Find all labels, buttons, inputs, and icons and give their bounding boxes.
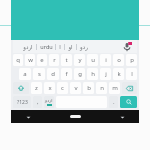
button[interactable]: Search <box>120 96 137 108</box>
staticText: p <box>130 56 134 64</box>
button[interactable]: p <box>126 54 137 66</box>
button[interactable]: z <box>31 82 42 94</box>
button[interactable]: a <box>19 68 31 80</box>
button[interactable]: r <box>49 54 59 66</box>
button[interactable]: h <box>87 68 98 80</box>
staticText: m <box>112 84 118 92</box>
staticText: ?123 <box>17 99 28 106</box>
button[interactable]: s <box>33 68 45 80</box>
staticText: q <box>16 56 20 64</box>
button[interactable]: o <box>113 54 124 66</box>
button[interactable]: i <box>100 54 111 66</box>
staticText: urdu <box>40 43 53 50</box>
staticText: d <box>51 70 55 78</box>
staticText: u <box>91 56 95 64</box>
staticText: y <box>78 56 82 64</box>
staticText: t <box>65 56 68 64</box>
button[interactable]: او <box>65 40 76 53</box>
button[interactable]: v <box>70 82 81 94</box>
button[interactable]: x <box>44 82 55 94</box>
button[interactable]: Recent apps <box>117 112 127 122</box>
staticText: a <box>23 70 27 78</box>
button[interactable]: g <box>74 68 85 80</box>
button[interactable]: . <box>109 96 118 108</box>
staticText: s <box>38 70 41 78</box>
staticText: او <box>68 44 73 50</box>
button[interactable]: y <box>74 54 85 66</box>
staticText: o <box>117 56 121 64</box>
button[interactable]: k <box>113 68 124 80</box>
button[interactable]: u <box>87 54 98 66</box>
button[interactable]: m <box>109 82 120 94</box>
button[interactable]: ?123 <box>13 96 31 108</box>
button[interactable]: ردو <box>77 40 91 53</box>
button[interactable]: j <box>100 68 111 80</box>
staticText: g <box>78 70 82 78</box>
button[interactable]: Home <box>70 115 81 118</box>
button[interactable]: Backspace <box>122 82 137 94</box>
staticText: c <box>61 84 64 92</box>
button[interactable]: n <box>96 82 107 94</box>
staticText: z <box>35 84 38 92</box>
button[interactable]: w <box>25 54 35 66</box>
staticText: , <box>37 98 39 106</box>
button[interactable]: b <box>83 82 94 94</box>
staticText: l <box>131 70 133 78</box>
staticText: b <box>87 84 91 92</box>
staticText: e <box>40 56 44 64</box>
button[interactable]: Back <box>23 112 33 122</box>
button[interactable]: e <box>37 54 47 66</box>
button[interactable]: c <box>57 82 68 94</box>
staticText: k <box>117 70 121 78</box>
button[interactable]: t <box>61 54 72 66</box>
staticText: r <box>53 56 56 64</box>
button[interactable]: ا <box>56 40 64 53</box>
staticText: h <box>91 70 95 78</box>
button[interactable]: q <box>13 54 23 66</box>
staticText: i <box>105 56 107 64</box>
button[interactable]: Switch language <box>44 96 54 108</box>
staticText: v <box>74 84 78 92</box>
button[interactable]: اردو <box>19 40 36 53</box>
staticText: x <box>48 84 52 92</box>
button[interactable]: Shift <box>13 82 29 94</box>
button[interactable]: urdu <box>37 40 55 53</box>
button[interactable]: l <box>126 68 137 80</box>
button[interactable]: f <box>61 68 72 80</box>
staticText: w <box>28 56 33 64</box>
staticText: . <box>113 98 115 106</box>
button[interactable]: , <box>33 96 42 108</box>
button[interactable]: Voice input <box>121 41 133 53</box>
staticText: n <box>100 84 104 92</box>
staticText: ردو <box>80 44 88 50</box>
staticText: اردو <box>45 98 53 103</box>
staticText: ا <box>59 44 61 50</box>
button[interactable]: d <box>47 68 59 80</box>
staticText: f <box>65 70 68 78</box>
staticText: j <box>105 70 107 78</box>
staticText: اردو <box>23 44 33 50</box>
